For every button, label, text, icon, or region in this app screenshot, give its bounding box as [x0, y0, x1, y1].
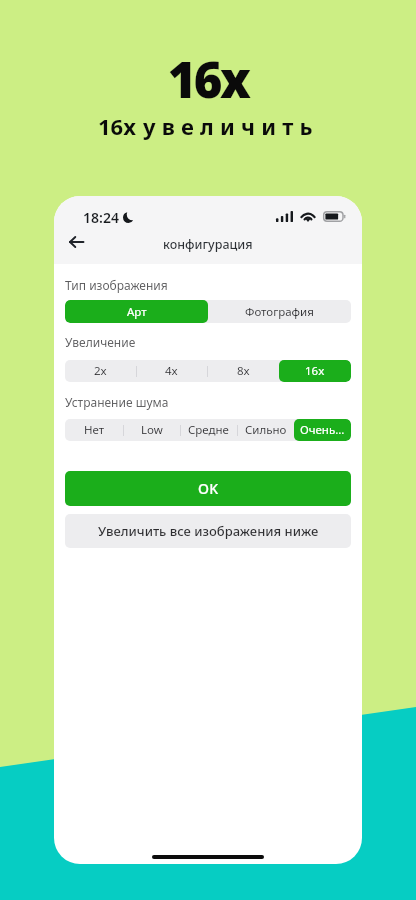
button[interactable]: 16x: [279, 360, 351, 382]
staticText: 4x: [165, 363, 178, 379]
staticText: 8x: [237, 363, 250, 379]
button[interactable]: Сильно: [237, 419, 294, 441]
staticText: Устранение шума: [65, 394, 169, 410]
button[interactable]: 8x: [207, 360, 279, 382]
staticText: Увеличить все изображения ниже: [98, 522, 319, 540]
staticText: Low: [141, 422, 163, 438]
button[interactable]: Очень...: [294, 419, 351, 441]
staticText: 18:24: [83, 208, 119, 227]
button[interactable]: Фотография: [208, 300, 351, 323]
button[interactable]: Увеличить все изображения ниже: [65, 514, 351, 548]
button[interactable]: Средне: [180, 419, 237, 441]
staticText: Увеличение: [65, 334, 136, 350]
staticText: Фотография: [245, 304, 314, 320]
button[interactable]: Арт: [65, 300, 208, 323]
staticText: Тип изображения: [65, 277, 168, 293]
staticText: 2x: [94, 363, 107, 379]
button[interactable]: 4x: [136, 360, 207, 382]
staticText: 16x: [98, 111, 136, 141]
staticText: увеличить: [143, 111, 319, 141]
staticText: OK: [198, 479, 219, 498]
staticText: 16x: [0, 46, 416, 113]
staticText: Очень...: [300, 422, 345, 438]
button[interactable]: Нет: [65, 419, 123, 441]
staticText: Средне: [188, 422, 229, 438]
staticText: 16x: [305, 363, 325, 379]
staticText: Сильно: [245, 422, 287, 438]
button[interactable]: Back: [63, 229, 89, 255]
button[interactable]: OK: [65, 471, 351, 506]
button[interactable]: 2x: [65, 360, 136, 382]
staticText: Арт: [127, 304, 147, 320]
staticText: конфигурация: [163, 236, 253, 253]
button[interactable]: Low: [123, 419, 180, 441]
staticText: Нет: [84, 422, 105, 438]
